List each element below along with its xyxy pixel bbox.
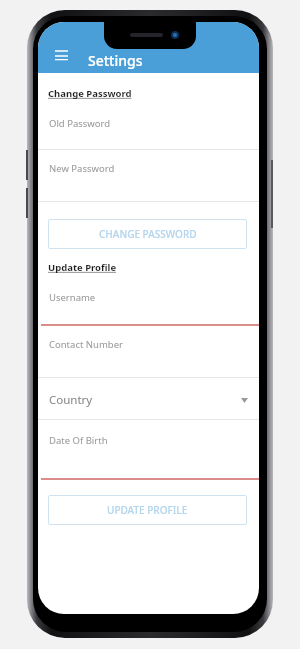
button[interactable]: New Password — [38, 150, 259, 201]
staticText: Date Of Birth — [49, 434, 108, 447]
staticText: Contact Number — [49, 338, 123, 351]
button[interactable]: Date Of Birth — [38, 420, 259, 478]
button[interactable]: Contact Number — [38, 326, 259, 377]
button[interactable]: Username — [38, 274, 259, 324]
button[interactable]: Old Password — [38, 100, 259, 149]
staticText: Change Password — [48, 87, 132, 100]
staticText: Country — [49, 392, 93, 408]
staticText: Username — [49, 291, 96, 304]
staticText: UPDATE PROFILE — [107, 503, 188, 517]
button[interactable]: UPDATE PROFILE — [48, 495, 247, 525]
staticText: Settings — [88, 51, 143, 70]
staticText: Update Profile — [48, 261, 117, 274]
staticText: Old Password — [49, 117, 111, 130]
button[interactable]: CHANGE PASSWORD — [48, 219, 247, 249]
button[interactable]: Open navigation menu — [50, 45, 72, 67]
button[interactable]: Country — [38, 378, 259, 419]
staticText: New Password — [49, 162, 115, 175]
staticText: CHANGE PASSWORD — [99, 227, 197, 241]
